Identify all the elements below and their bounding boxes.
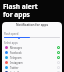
button[interactable]: Disabled bbox=[57, 71, 60, 72]
button[interactable]: Twitter bbox=[2, 65, 62, 70]
button[interactable]: Instagram bbox=[2, 60, 62, 65]
button[interactable]: Disabled bbox=[57, 66, 60, 69]
staticText: Select apps bbox=[4, 41, 18, 45]
button[interactable]: Disabled bbox=[57, 61, 60, 64]
staticText: Facebook bbox=[10, 51, 22, 55]
button[interactable]: Messages bbox=[2, 45, 62, 50]
staticText: Flash speed bbox=[4, 32, 19, 36]
staticText: Twitter bbox=[10, 66, 19, 70]
staticText: Messages bbox=[10, 46, 23, 50]
staticText: Instagram bbox=[10, 61, 23, 65]
staticText: Notification for apps bbox=[16, 23, 49, 27]
button[interactable]: Facebook bbox=[2, 50, 62, 55]
button[interactable]: Telegram bbox=[2, 55, 62, 60]
button[interactable]: Enabled bbox=[57, 46, 60, 49]
button[interactable]: Enabled bbox=[57, 51, 60, 54]
staticText: Telegram bbox=[10, 56, 22, 60]
staticText: LinkedIn bbox=[10, 71, 21, 72]
staticText: Flash alert for apps bbox=[3, 2, 38, 19]
button[interactable]: Flash speed slider bbox=[18, 37, 20, 39]
button[interactable]: LinkedIn bbox=[2, 70, 62, 72]
button[interactable]: Enabled bbox=[57, 56, 60, 59]
